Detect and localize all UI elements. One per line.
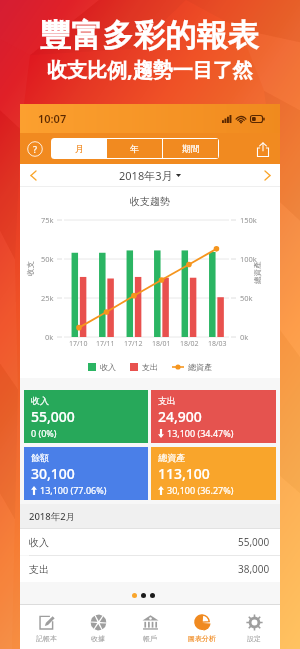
staticText: 總資產	[158, 452, 185, 463]
staticText: 17/11	[96, 339, 115, 349]
button[interactable]: 年	[107, 139, 162, 158]
staticText: 餘額	[31, 452, 49, 463]
staticText: 17/12	[124, 339, 143, 349]
staticText: 收支趨勢	[20, 195, 280, 208]
button[interactable]: 圖表分析	[176, 605, 228, 649]
staticText: 30,100	[31, 464, 75, 483]
staticText: 2018年2月	[29, 510, 76, 523]
staticText: 收據	[91, 634, 105, 643]
staticText: 記帳本	[36, 634, 57, 643]
button[interactable]: 收據	[72, 605, 124, 649]
staticText: 18/02	[180, 339, 199, 349]
staticText: 總資產	[188, 362, 212, 372]
button[interactable]: 收入	[20, 529, 280, 555]
button[interactable]: Help	[27, 141, 43, 157]
button[interactable]: 記帳本	[20, 605, 72, 649]
staticText: 100k	[240, 254, 257, 264]
staticText: 55,000	[238, 535, 270, 549]
button[interactable]: 設定	[228, 605, 280, 649]
staticText: 總資產	[253, 261, 262, 284]
button[interactable]: 期間	[163, 139, 218, 158]
staticText: 0k	[45, 332, 54, 342]
staticText: 18/03	[208, 339, 227, 349]
staticText: 113,100	[158, 464, 210, 483]
button[interactable]: 支出	[20, 556, 280, 582]
staticText: 25k	[41, 293, 54, 303]
staticText: 收入	[100, 362, 116, 372]
staticText: 17/10	[69, 339, 88, 349]
button[interactable]: 支出	[151, 390, 276, 443]
staticText: 設定	[247, 634, 261, 643]
staticText: 收入	[31, 395, 49, 406]
staticText: 年	[130, 143, 139, 154]
staticText: 75k	[41, 215, 54, 225]
staticText: 2018年3月	[119, 168, 173, 182]
button[interactable]: 帳戶	[124, 605, 176, 649]
staticText: 30,100 (36.27%)	[167, 484, 234, 496]
button[interactable]: 2018年3月	[115, 164, 185, 186]
staticText: 支出	[29, 563, 49, 576]
staticText: 13,100 (77.06%)	[40, 484, 107, 496]
staticText: 月	[75, 143, 84, 154]
staticText: 38,000	[238, 562, 270, 576]
staticText: 收支	[26, 261, 35, 276]
staticText: 0k	[240, 332, 249, 342]
staticText: 豐富多彩的報表	[40, 16, 260, 55]
staticText: 圖表分析	[188, 634, 216, 643]
staticText: 收入	[29, 536, 49, 549]
staticText: 收支比例,趨勢一目了然	[47, 56, 253, 83]
staticText: 150k	[240, 215, 257, 225]
staticText: 24,900	[158, 407, 202, 426]
button[interactable]: Share	[252, 138, 274, 160]
staticText: ?	[33, 143, 38, 155]
button[interactable]: Previous month	[20, 164, 46, 186]
button[interactable]: Next month	[254, 164, 280, 186]
staticText: 10:07	[38, 111, 67, 126]
staticText: 50k	[41, 254, 54, 264]
staticText: 13,100 (34.47%)	[167, 427, 234, 439]
staticText: 帳戶	[143, 634, 157, 643]
button[interactable]: 餘額	[24, 447, 148, 500]
staticText: 支出	[142, 362, 158, 372]
button[interactable]: 收入	[24, 390, 148, 443]
staticText: 18/01	[152, 339, 171, 349]
staticText: 期間	[182, 143, 200, 154]
staticText: 55,000	[31, 407, 75, 426]
button[interactable]: 總資產	[151, 447, 276, 500]
staticText: 支出	[158, 395, 176, 406]
button[interactable]: 月	[52, 139, 106, 158]
staticText: 50k	[240, 293, 253, 303]
staticText: 0 (0%)	[31, 427, 57, 439]
